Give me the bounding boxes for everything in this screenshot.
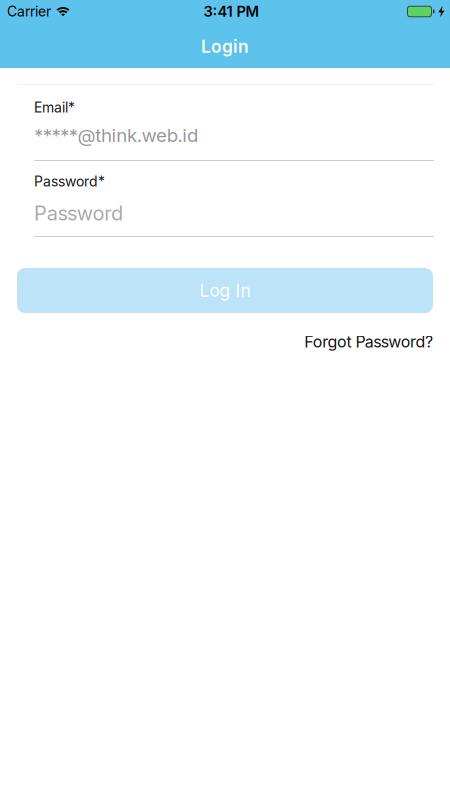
staticText: Forgot Password? bbox=[304, 332, 433, 351]
button[interactable]: Email bbox=[34, 124, 198, 147]
button[interactable]: Forgot Password? bbox=[304, 332, 433, 351]
staticText: 3:41 PM bbox=[203, 3, 259, 20]
button[interactable]: Password bbox=[34, 201, 123, 225]
staticText: Carrier bbox=[7, 3, 51, 20]
staticText: Password* bbox=[34, 173, 105, 190]
button[interactable]: Log In bbox=[17, 268, 433, 313]
staticText: Log In bbox=[199, 280, 250, 301]
staticText: Login bbox=[201, 36, 249, 57]
staticText: Email* bbox=[34, 99, 75, 116]
staticText: Password bbox=[34, 201, 123, 225]
staticText: *****@think.web.id bbox=[34, 124, 198, 147]
